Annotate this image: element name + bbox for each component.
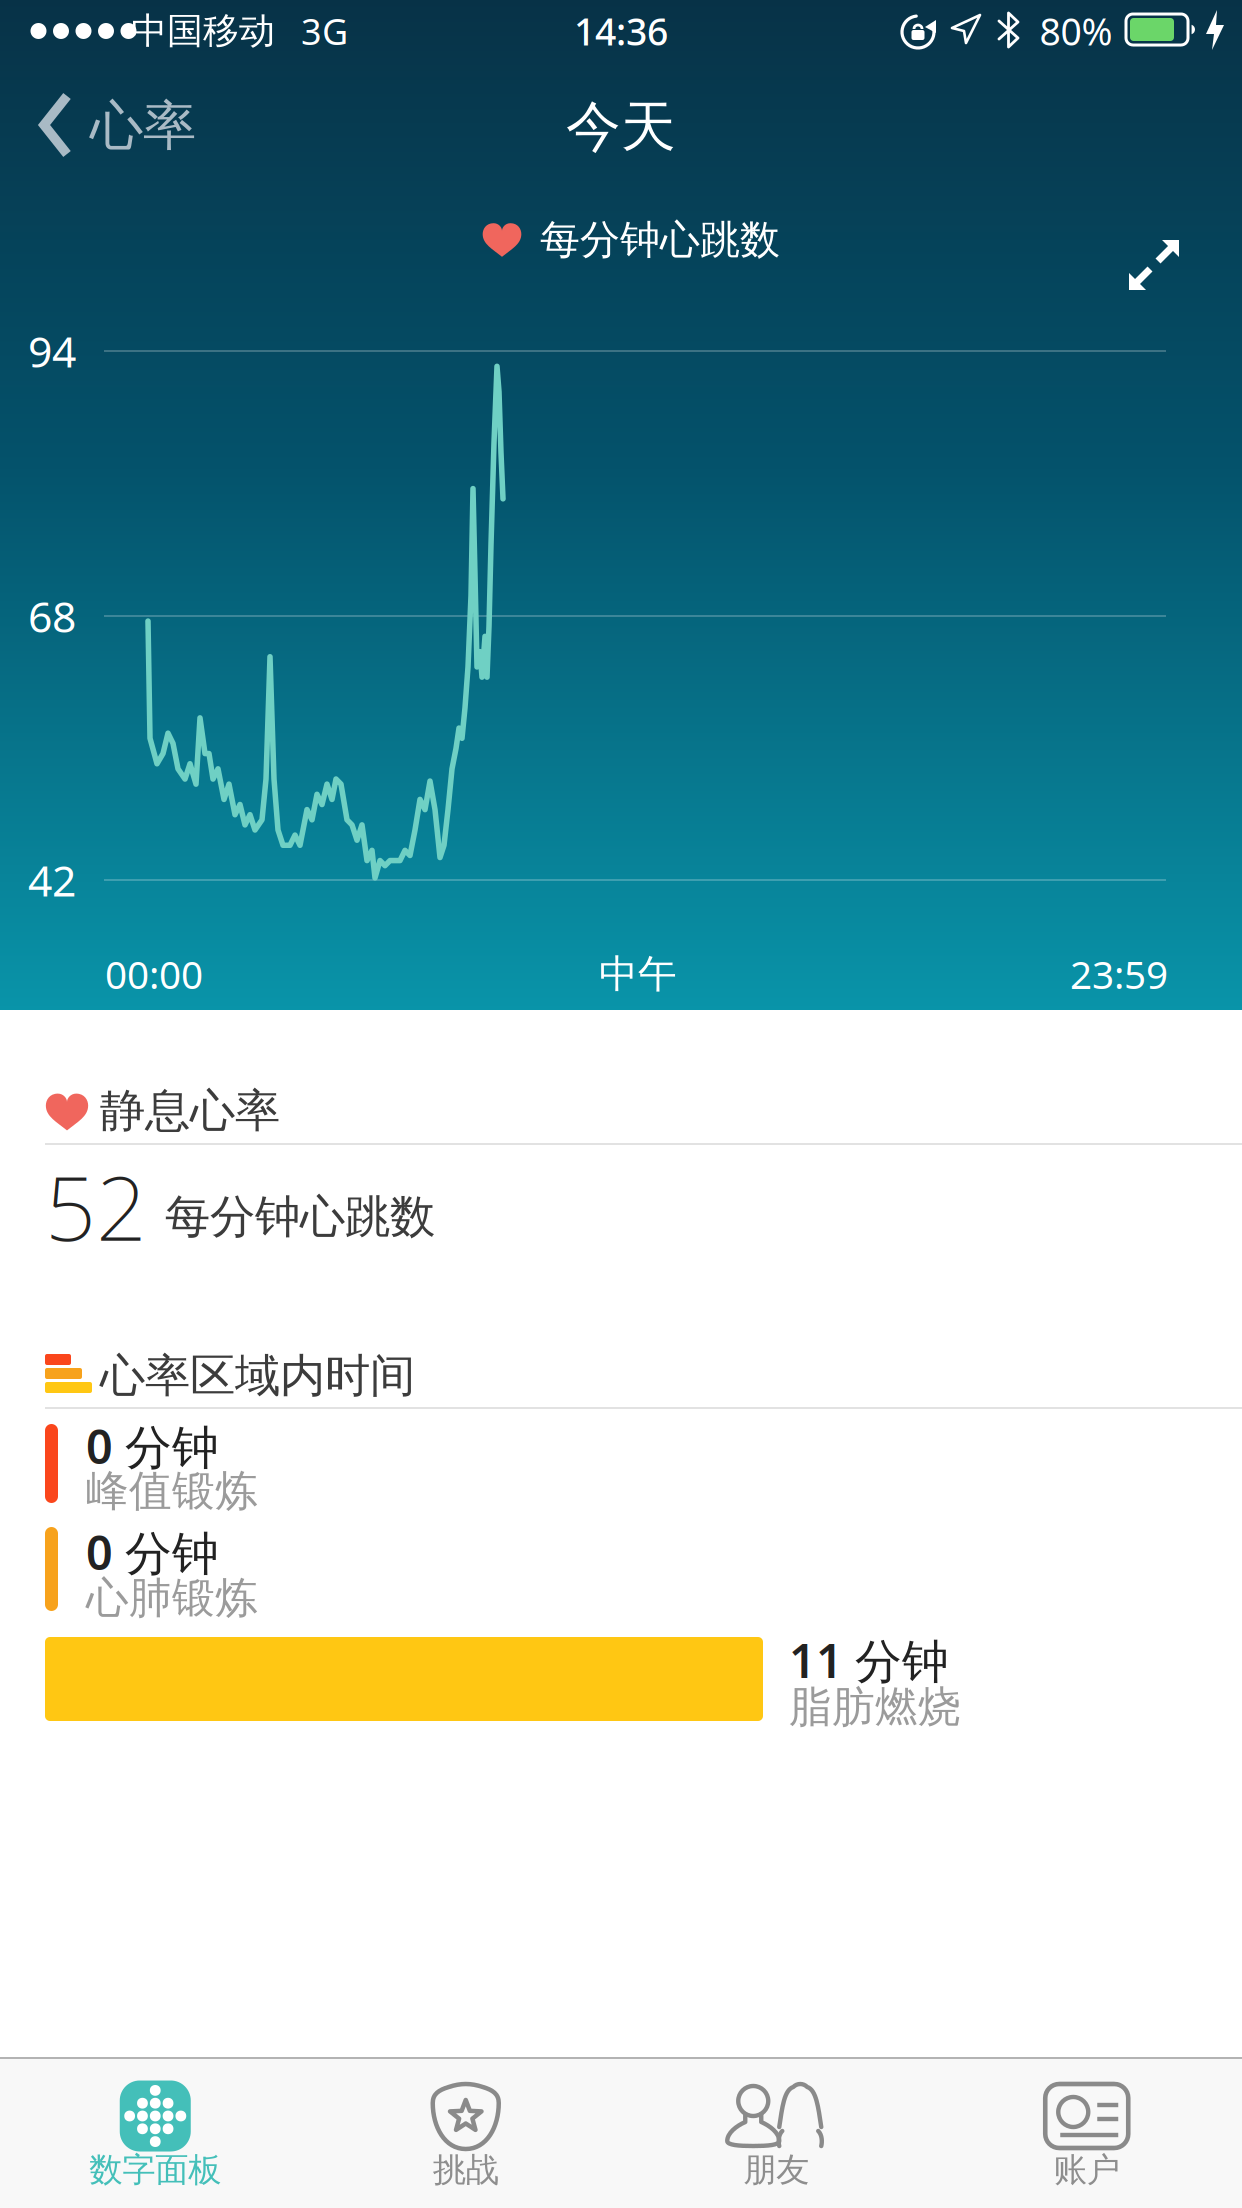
staticText: 中午 bbox=[599, 950, 677, 998]
staticText: 静息心率 bbox=[100, 1083, 280, 1139]
staticText: 0 分钟 bbox=[86, 1521, 219, 1583]
button[interactable]: 数字面板 bbox=[0, 2057, 310, 2208]
staticText: 3G bbox=[301, 7, 348, 55]
staticText: 中国移动 bbox=[131, 9, 275, 53]
staticText: 0 分钟 bbox=[86, 1415, 219, 1477]
staticText: 心率 bbox=[90, 93, 196, 159]
staticText: 脂肪燃烧 bbox=[789, 1681, 961, 1733]
staticText: 14:36 bbox=[574, 6, 668, 56]
staticText: 心率区域内时间 bbox=[100, 1348, 415, 1404]
staticText: 挑战 bbox=[433, 2149, 499, 2190]
staticText: 52 bbox=[45, 1147, 147, 1265]
staticText: 朋友 bbox=[743, 2149, 809, 2190]
button[interactable]: 朋友 bbox=[621, 2057, 931, 2208]
staticText: 00:00 bbox=[105, 948, 203, 1000]
staticText: 80% bbox=[1039, 6, 1112, 56]
staticText: 今天 bbox=[566, 93, 676, 160]
staticText: 23:59 bbox=[1070, 948, 1168, 1000]
staticText: 账户 bbox=[1054, 2149, 1120, 2190]
button[interactable]: 挑战 bbox=[310, 2057, 621, 2208]
staticText: 心肺锻炼 bbox=[86, 1572, 258, 1624]
staticText: 峰值锻炼 bbox=[86, 1465, 258, 1517]
button[interactable]: 返回 心率 bbox=[0, 0, 290, 110]
staticText: 数字面板 bbox=[89, 2149, 221, 2190]
staticText: 每分钟心跳数 bbox=[540, 215, 780, 264]
staticText: 每分钟心跳数 bbox=[165, 1189, 435, 1245]
staticText: 11 分钟 bbox=[789, 1629, 949, 1691]
staticText: 68 bbox=[28, 588, 76, 644]
button[interactable]: 展开 bbox=[1127, 238, 1181, 292]
staticText: 42 bbox=[28, 852, 76, 908]
button[interactable]: 账户 bbox=[931, 2057, 1242, 2208]
staticText: 94 bbox=[28, 323, 76, 379]
